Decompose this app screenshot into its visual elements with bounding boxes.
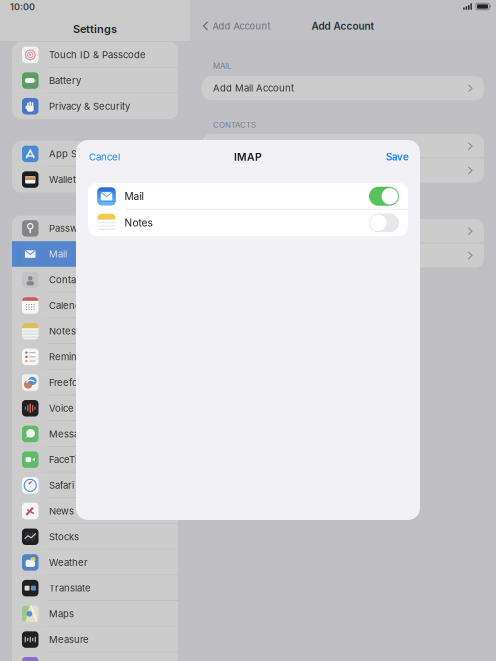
staticText: FaceTime: [49, 454, 91, 465]
staticText: Add Mail Account: [213, 82, 294, 94]
button[interactable]: Calendar: [12, 293, 178, 318]
staticText: Notes: [49, 325, 76, 337]
button[interactable]: Privacy & Security: [12, 93, 178, 119]
button[interactable]: Mail toggle: [369, 187, 399, 206]
button[interactable]: [202, 134, 484, 158]
button[interactable]: Stocks: [12, 524, 178, 550]
staticText: IMAP: [234, 151, 262, 163]
button[interactable]: Save: [375, 142, 420, 172]
button[interactable]: Cancel: [76, 142, 133, 172]
button[interactable]: Freeform: [12, 370, 178, 395]
staticText: Privacy & Security: [49, 100, 130, 112]
button[interactable]: Maps: [12, 601, 178, 627]
staticText: Passwords: [49, 223, 98, 234]
button[interactable]: Battery: [12, 68, 178, 93]
button[interactable]: Notes: [12, 318, 178, 344]
staticText: Translate: [49, 582, 91, 594]
staticText: Messages: [49, 428, 96, 440]
staticText: Stocks: [49, 531, 79, 542]
button[interactable]: Reminders: [12, 344, 178, 370]
staticText: Measure: [49, 634, 89, 645]
button[interactable]: Wallet: [12, 167, 178, 192]
staticText: Mail: [49, 248, 67, 260]
button[interactable]: Mail: [12, 241, 178, 267]
button[interactable]: [202, 158, 484, 183]
button[interactable]: [202, 219, 484, 243]
staticText: Safari: [49, 480, 74, 491]
staticText: Battery: [49, 75, 81, 86]
staticText: CONTACTS: [213, 120, 256, 130]
staticText: Touch ID & Passcode: [49, 49, 146, 61]
staticText: MAIL: [213, 61, 231, 71]
staticText: Calendar: [49, 300, 90, 311]
staticText: Notes: [124, 217, 152, 229]
staticText: Freeform: [49, 377, 90, 388]
button[interactable]: Voice Memos: [12, 395, 178, 421]
staticText: Reminders: [49, 351, 98, 363]
staticText: Contacts: [49, 274, 89, 285]
button[interactable]: Messages: [12, 421, 178, 447]
button[interactable]: Shortcuts: [12, 652, 178, 661]
staticText: Wallet: [49, 174, 76, 185]
staticText: News: [49, 505, 74, 517]
button[interactable]: Passwords: [12, 215, 178, 241]
button[interactable]: Contacts: [12, 267, 178, 293]
staticText: Cancel: [89, 151, 120, 163]
button[interactable]: Safari: [12, 472, 178, 498]
staticText: Mail: [124, 190, 143, 202]
staticText: Voice Memos: [49, 402, 111, 414]
button[interactable]: Touch ID & Passcode: [12, 42, 178, 68]
button[interactable]: Add Account: [193, 13, 281, 39]
staticText: Maps: [49, 608, 74, 620]
staticText: Add Account: [311, 20, 374, 32]
button[interactable]: Measure: [12, 627, 178, 652]
staticText: Save: [386, 151, 409, 163]
button[interactable]: [202, 243, 484, 268]
staticText: Settings: [73, 22, 117, 36]
staticText: App Store: [49, 148, 95, 160]
button[interactable]: News: [12, 498, 178, 524]
button[interactable]: Translate: [12, 575, 178, 601]
button[interactable]: Weather: [12, 550, 178, 575]
button[interactable]: App Store: [12, 141, 178, 167]
button[interactable]: FaceTime: [12, 447, 178, 472]
staticText: Weather: [49, 557, 88, 568]
staticText: 10:00: [10, 1, 35, 12]
button[interactable]: Notes toggle: [369, 213, 399, 232]
staticText: Add Account: [213, 20, 271, 32]
button[interactable]: Add Mail Account: [202, 76, 484, 100]
